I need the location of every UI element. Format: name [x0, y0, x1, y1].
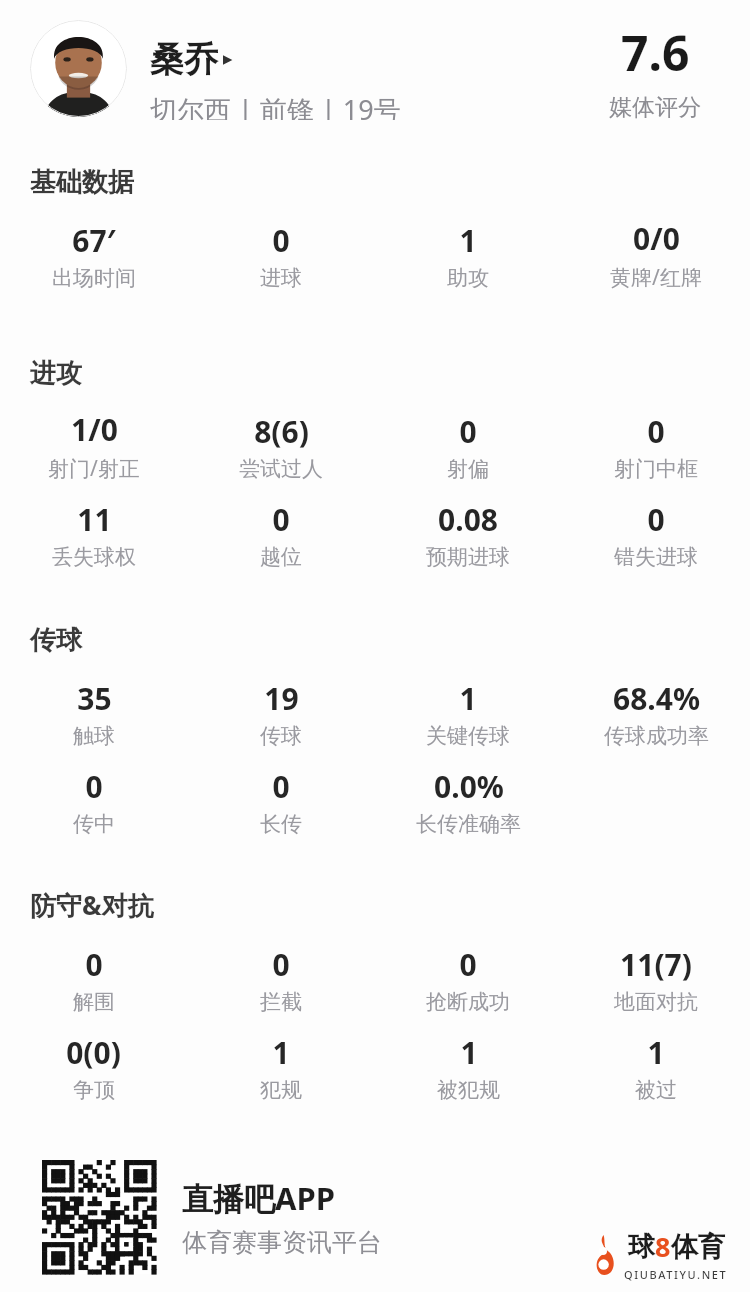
button[interactable]: 0(0): [66, 1030, 121, 1105]
staticText: 解围: [73, 989, 115, 1015]
button[interactable]: 1/0: [48, 407, 140, 485]
staticText: 1: [460, 1032, 478, 1073]
staticText: 传球: [260, 723, 302, 749]
staticText: 尝试过人: [239, 456, 323, 482]
staticText: 射门/射正: [48, 454, 140, 483]
staticText: 黄牌/红牌: [610, 263, 702, 292]
staticText: 出场时间: [52, 265, 136, 291]
button[interactable]: 19: [260, 676, 302, 751]
button[interactable]: 0: [614, 497, 698, 572]
staticText: 长传准确率: [416, 811, 521, 837]
staticText: 被犯规: [437, 1077, 500, 1103]
staticText: 1/0: [71, 409, 118, 450]
staticText: 射偏: [447, 456, 489, 482]
staticText: 11(7): [620, 944, 692, 985]
staticText: 7.6: [621, 20, 690, 85]
staticText: 0: [459, 411, 477, 452]
button[interactable]: 35: [73, 676, 115, 751]
staticText: 触球: [73, 723, 115, 749]
staticText: 0: [272, 944, 290, 985]
button[interactable]: 0/0: [610, 216, 702, 294]
staticText: QIUBATIYU.NET: [624, 1267, 728, 1282]
button[interactable]: 0: [73, 764, 115, 839]
staticText: 关键传球: [426, 723, 510, 749]
staticText: 67′: [72, 220, 116, 261]
button[interactable]: 0: [73, 942, 115, 1017]
staticText: 抢断成功: [426, 989, 510, 1015]
staticText: 0.0%: [434, 766, 504, 807]
staticText: 长传: [260, 811, 302, 837]
button[interactable]: 7.6: [560, 20, 750, 120]
button[interactable]: 0: [260, 497, 302, 572]
staticText: 0: [272, 766, 290, 807]
button[interactable]: 1: [447, 218, 489, 293]
staticText: 进攻: [30, 357, 82, 390]
button[interactable]: 67′: [52, 218, 136, 293]
button[interactable]: 球8体育 QIUBATIYU.NET: [588, 1228, 728, 1282]
button[interactable]: 0: [447, 409, 489, 484]
staticText: 19: [264, 678, 299, 719]
button[interactable]: 11(7): [614, 942, 698, 1017]
staticText: 1: [272, 1032, 290, 1073]
staticText: 35: [77, 678, 112, 719]
staticText: 助攻: [447, 265, 489, 291]
staticText: 直播吧APP: [182, 1177, 335, 1219]
staticText: 预期进球: [426, 544, 510, 570]
staticText: 争顶: [73, 1077, 115, 1103]
staticText: 1: [647, 1032, 665, 1073]
staticText: 68.4%: [613, 678, 700, 719]
staticText: 越位: [260, 544, 302, 570]
staticText: 11: [77, 499, 112, 540]
button[interactable]: 11: [52, 497, 136, 572]
staticText: 0/0: [633, 218, 680, 259]
staticText: 0: [647, 499, 665, 540]
button[interactable]: 8(6): [239, 409, 323, 484]
button[interactable]: 68.4%: [604, 676, 709, 751]
staticText: 传球: [30, 624, 82, 657]
staticText: 0: [85, 766, 103, 807]
staticText: 进球: [260, 265, 302, 291]
button[interactable]: 0: [260, 218, 302, 293]
staticText: 犯规: [260, 1077, 302, 1103]
button[interactable]: 1: [635, 1030, 677, 1105]
staticText: 错失进球: [614, 544, 698, 570]
staticText: 0.08: [438, 499, 498, 540]
button[interactable]: 0.08: [426, 497, 510, 572]
staticText: 切尔西 | 前锋 | 19号: [150, 91, 401, 120]
staticText: 8: [655, 1228, 671, 1265]
button[interactable]: 桑乔: [150, 38, 234, 81]
staticText: 传球成功率: [604, 723, 709, 749]
staticText: 射门中框: [614, 456, 698, 482]
staticText: 被过: [635, 1077, 677, 1103]
staticText: 基础数据: [30, 166, 134, 199]
button[interactable]: 0: [426, 942, 510, 1017]
staticText: 地面对抗: [614, 989, 698, 1015]
staticText: 球: [628, 1230, 655, 1264]
staticText: 0: [272, 220, 290, 261]
button[interactable]: 0: [260, 764, 302, 839]
button[interactable]: 0: [260, 942, 302, 1017]
staticText: 丢失球权: [52, 544, 136, 570]
staticText: 1: [459, 678, 477, 719]
button[interactable]: 直播吧APP: [42, 1160, 382, 1274]
staticText: 体育: [671, 1230, 725, 1264]
button[interactable]: 1: [426, 676, 510, 751]
button[interactable]: Player photo: [30, 20, 127, 117]
staticText: 桑乔: [150, 38, 218, 81]
button[interactable]: 0: [614, 409, 698, 484]
button[interactable]: 1: [437, 1030, 500, 1105]
staticText: 拦截: [260, 989, 302, 1015]
staticText: 传中: [73, 811, 115, 837]
staticText: 1: [459, 220, 477, 261]
staticText: 0(0): [66, 1032, 121, 1073]
button[interactable]: 0.0%: [416, 764, 521, 839]
staticText: 0: [272, 499, 290, 540]
staticText: 防守&对抗: [30, 887, 154, 923]
staticText: 体育赛事资讯平台: [182, 1227, 382, 1258]
staticText: 媒体评分: [609, 93, 701, 120]
staticText: 0: [85, 944, 103, 985]
staticText: 8(6): [254, 411, 309, 452]
staticText: 0: [647, 411, 665, 452]
staticText: 0: [459, 944, 477, 985]
button[interactable]: 1: [260, 1030, 302, 1105]
